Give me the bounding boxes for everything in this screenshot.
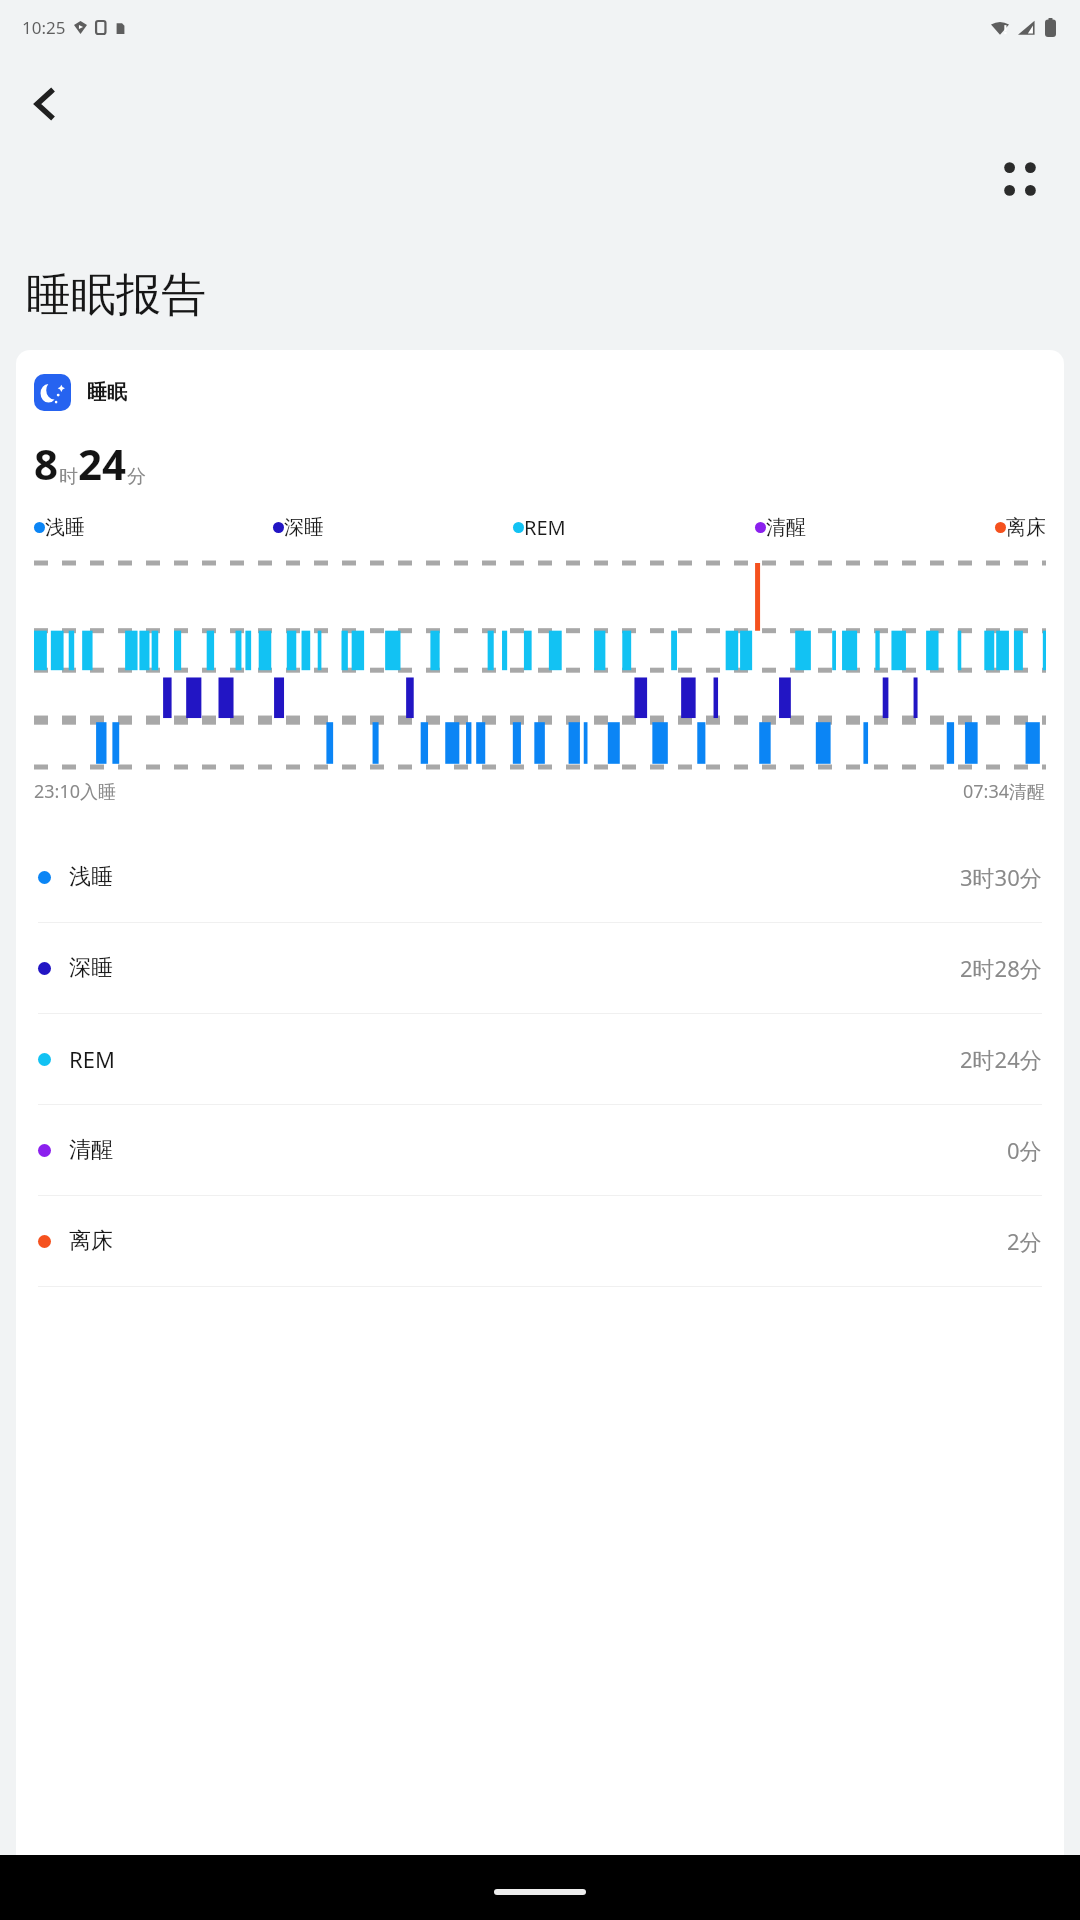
staticText: 24 bbox=[78, 435, 127, 492]
button[interactable]: 深睡 bbox=[16, 923, 1064, 1013]
staticText: 离床 bbox=[69, 1227, 113, 1255]
staticText: 清醒 bbox=[69, 1136, 113, 1164]
button[interactable]: REM bbox=[16, 1014, 1064, 1104]
staticText: 8 bbox=[34, 435, 59, 492]
staticText: 3时30分 bbox=[960, 862, 1042, 892]
button[interactable]: Back bbox=[14, 73, 76, 135]
staticText: 23:10入睡 bbox=[34, 779, 117, 804]
staticText: 清醒 bbox=[766, 515, 806, 540]
staticText: 10:25 bbox=[22, 16, 66, 39]
button[interactable]: 浅睡 bbox=[16, 832, 1064, 922]
staticText: 睡眠 bbox=[87, 380, 127, 405]
button[interactable]: More options bbox=[972, 131, 1068, 227]
staticText: 浅睡 bbox=[45, 515, 85, 540]
staticText: 2时24分 bbox=[960, 1044, 1042, 1074]
staticText: 分 bbox=[127, 465, 146, 489]
staticText: 睡眠报告 bbox=[26, 267, 206, 324]
staticText: 深睡 bbox=[69, 954, 113, 982]
staticText: 07:34清醒 bbox=[963, 779, 1046, 804]
button[interactable]: 离床 bbox=[16, 1196, 1064, 1286]
staticText: 浅睡 bbox=[69, 863, 113, 891]
staticText: 深睡 bbox=[284, 515, 324, 540]
staticText: REM bbox=[69, 1044, 115, 1074]
staticText: 2时28分 bbox=[960, 953, 1042, 983]
button[interactable]: 清醒 bbox=[16, 1105, 1064, 1195]
staticText: 2分 bbox=[1007, 1226, 1042, 1256]
button[interactable]: 睡眠 bbox=[34, 374, 127, 411]
staticText: 0分 bbox=[1007, 1135, 1042, 1165]
staticText: REM bbox=[524, 514, 566, 541]
staticText: 时 bbox=[59, 465, 78, 489]
staticText: 离床 bbox=[1006, 515, 1046, 540]
